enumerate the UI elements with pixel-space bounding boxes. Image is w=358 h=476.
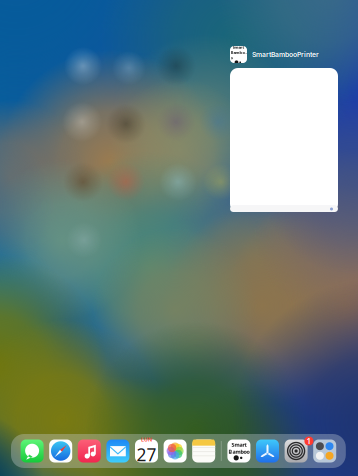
staticText: LUN [141,436,152,443]
button[interactable]: Safari [46,439,75,462]
button[interactable]: Music [75,439,104,462]
button[interactable]: Calendar [132,439,161,462]
staticText: 27 [136,443,156,466]
staticText: Smart [232,44,244,50]
button[interactable]: Settings [282,439,310,462]
button[interactable]: Mail [104,439,132,462]
button[interactable]: App Store [253,439,282,462]
staticText: Smart [231,441,246,448]
button[interactable]: Notes [189,439,218,462]
button[interactable]: Photos [161,439,189,462]
button[interactable]: Messages [18,439,46,462]
staticText: Bamboo [230,50,246,60]
staticText: SmartBambooPrinter [252,50,319,59]
button[interactable]: App Library [310,439,339,462]
staticText: 1 [306,436,311,446]
button[interactable]: SmartBambooPrinter [225,439,253,462]
staticText: Bamboo [228,448,249,455]
